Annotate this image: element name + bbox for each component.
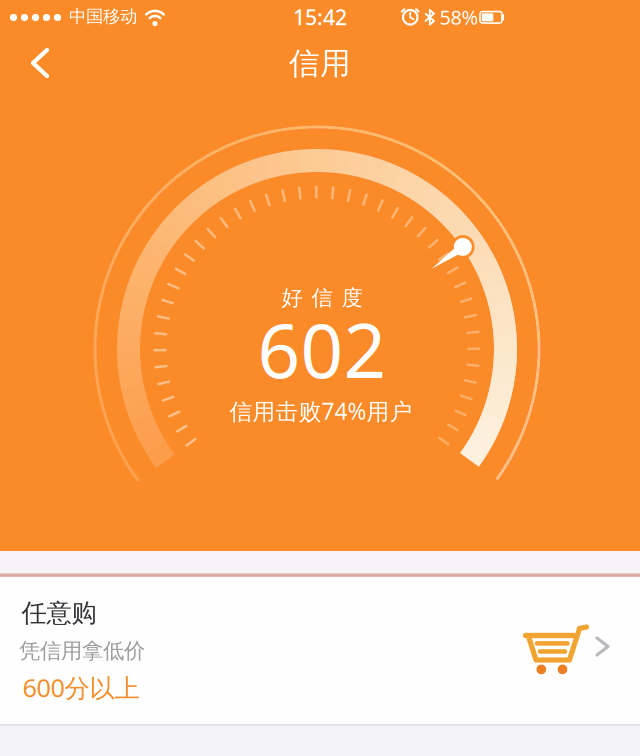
staticText: 中国移动	[69, 6, 137, 27]
button[interactable]: Back	[0, 39, 60, 87]
staticText: 任意购	[21, 597, 96, 628]
staticText: 602	[257, 299, 386, 399]
staticText: 58%	[439, 4, 478, 30]
staticText: 信用击败74%用户	[229, 396, 412, 426]
button[interactable]: 任意购	[0, 577, 640, 724]
staticText: 600分以上	[22, 671, 139, 704]
staticText: 好信度	[281, 285, 362, 311]
staticText: 凭信用拿低价	[19, 638, 145, 664]
staticText: 信用	[289, 45, 351, 82]
staticText: 15:42	[293, 3, 347, 31]
